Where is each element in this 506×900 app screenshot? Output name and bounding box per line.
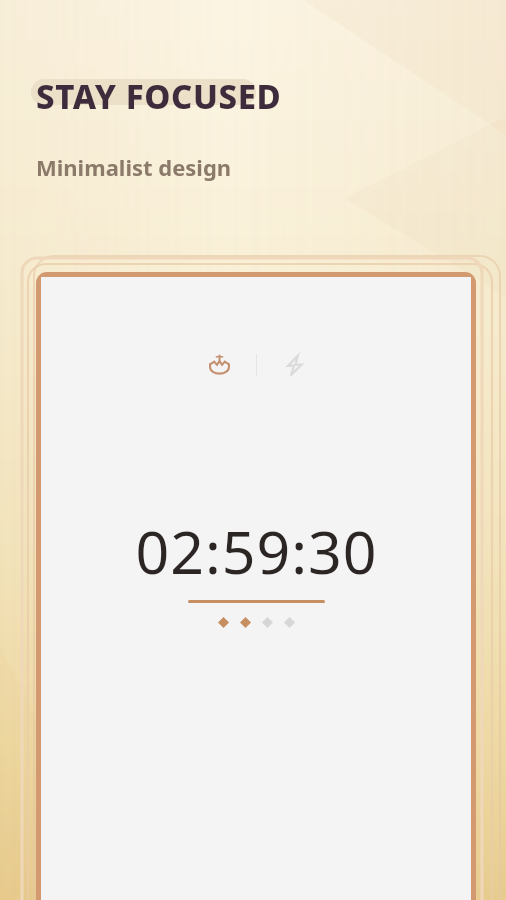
staticText: Minimalist design <box>36 152 232 182</box>
staticText: 02:59:30 <box>135 511 378 591</box>
button[interactable]: Flow timer mode <box>276 347 312 383</box>
staticText: STAY FOCUSED <box>36 74 282 119</box>
button[interactable]: Pomodoro timer mode <box>201 347 237 383</box>
